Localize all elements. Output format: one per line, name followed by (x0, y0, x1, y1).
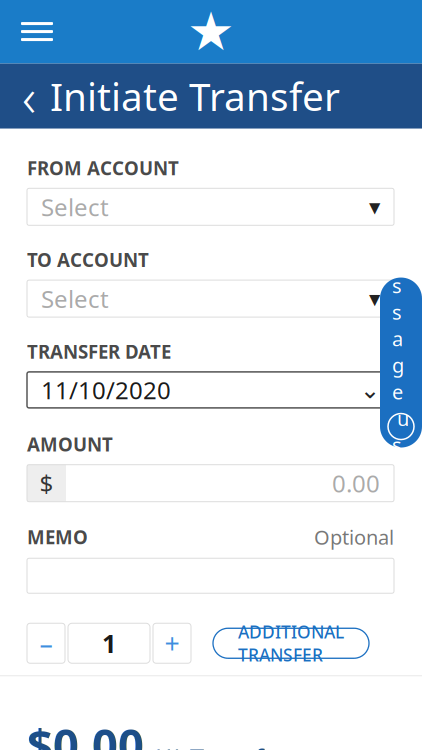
staticText: ▾ (369, 194, 380, 220)
button[interactable]: Decrease (27, 623, 65, 663)
staticText: + (164, 626, 179, 661)
button[interactable]: $ (27, 465, 394, 502)
staticText: ★ (187, 1, 235, 62)
staticText: FROM ACCOUNT (27, 155, 179, 180)
staticText: ‹ (22, 61, 36, 131)
staticText: AMOUNT (27, 432, 113, 457)
staticText: M e s s a g e u s (392, 219, 410, 458)
staticText: Select (41, 283, 109, 315)
button[interactable]: Increase (153, 623, 191, 663)
button[interactable]: Message us (380, 277, 422, 447)
staticText: TO ACCOUNT (27, 247, 149, 272)
staticText: ADDITIONAL TRANSFER (238, 620, 344, 666)
staticText: ⌄ (360, 376, 380, 403)
staticText: TRANSFER DATE (27, 339, 171, 364)
button[interactable]: ‹ (0, 63, 340, 128)
staticText: 0.00 (332, 467, 380, 499)
staticText: Optional (314, 524, 394, 550)
staticText: $0.00 (27, 714, 144, 750)
staticText: (1) Transfer (153, 741, 288, 750)
button[interactable]: Menu (12, 9, 62, 53)
staticText: Select (41, 191, 109, 223)
button[interactable]: ADDITIONAL TRANSFER (213, 628, 369, 658)
staticText: 11/10/2020 (41, 374, 171, 406)
staticText: $ (39, 467, 53, 499)
staticText: 1 (102, 626, 116, 660)
button[interactable]: 11/10/2020 (27, 372, 394, 408)
button[interactable]: Select (27, 280, 394, 317)
staticText: MEMO (27, 525, 88, 549)
button[interactable] (27, 558, 394, 593)
button[interactable]: Select (27, 188, 394, 225)
staticText: – (39, 626, 52, 661)
staticText: ▾ (369, 286, 380, 311)
staticText: Initiate Transfer (50, 70, 340, 122)
